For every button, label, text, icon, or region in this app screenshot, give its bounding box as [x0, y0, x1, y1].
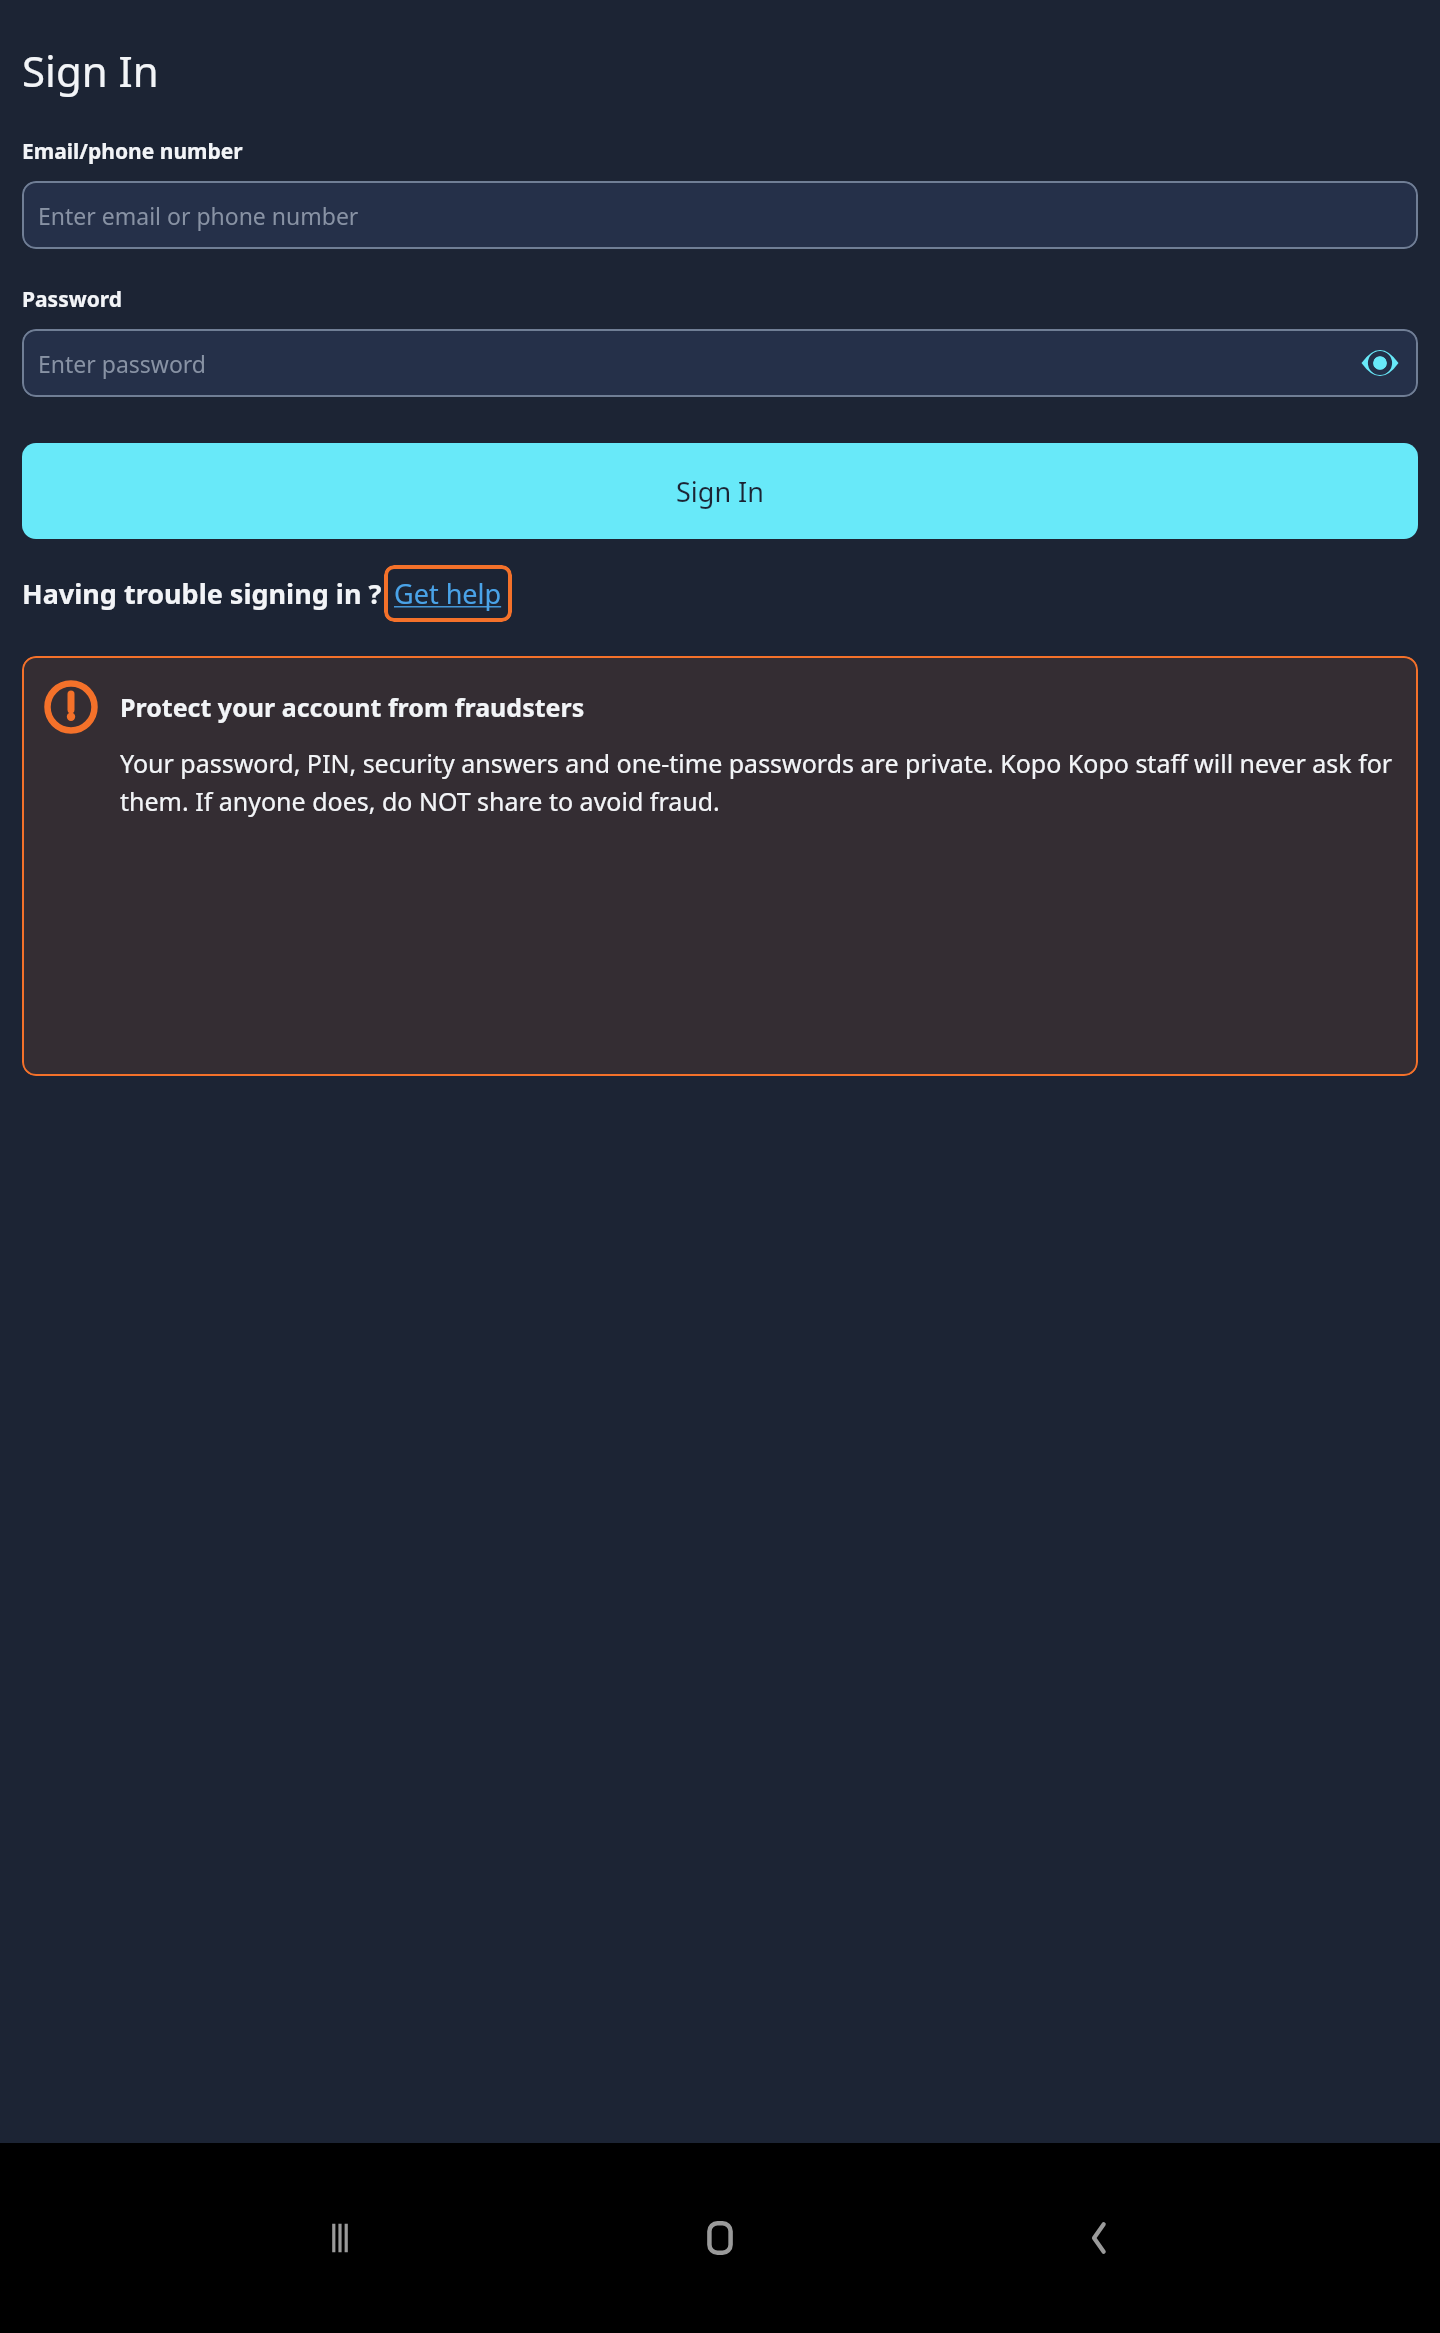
button[interactable]: Get help — [384, 565, 512, 622]
staticText: Sign In — [676, 473, 764, 510]
staticText: Having trouble signing in ? — [22, 575, 382, 612]
button[interactable]: Back — [1060, 2198, 1140, 2278]
button[interactable]: Recents — [300, 2198, 380, 2278]
button[interactable]: Enter email or phone number — [22, 181, 1418, 249]
button[interactable]: Sign In — [22, 443, 1418, 539]
staticText: Sign In — [22, 42, 159, 99]
staticText: Password — [22, 285, 123, 314]
staticText: Enter email or phone number — [38, 200, 359, 231]
staticText: Get help — [394, 575, 502, 612]
staticText: Your password, PIN, security answers and… — [120, 746, 1396, 818]
staticText: Email/phone number — [22, 137, 243, 166]
button[interactable]: Home — [680, 2198, 760, 2278]
button[interactable]: Show password — [1356, 339, 1404, 387]
staticText: Protect your account from fraudsters — [120, 690, 585, 724]
staticText: Enter password — [38, 348, 207, 379]
button[interactable]: Enter password — [22, 329, 1418, 397]
